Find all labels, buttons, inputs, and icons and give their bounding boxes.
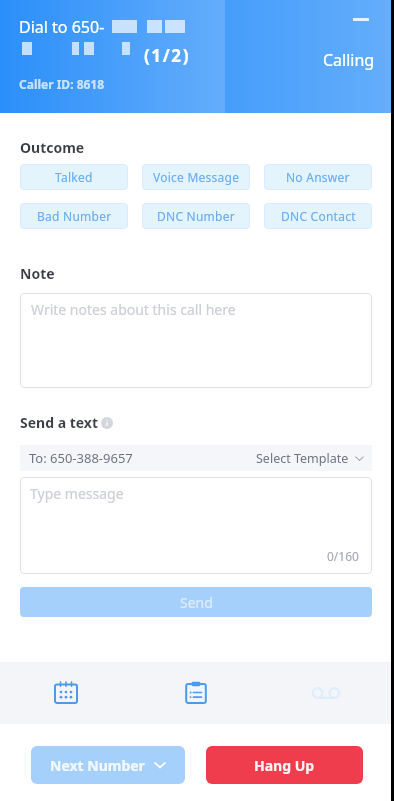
- button[interactable]: Hang Up: [206, 746, 363, 784]
- button[interactable]: Notes: [131, 662, 261, 724]
- button[interactable]: DNC Number: [142, 203, 250, 229]
- staticText: 0/160: [327, 548, 359, 564]
- button[interactable]: Send: [20, 587, 372, 617]
- button[interactable]: Talked: [20, 164, 128, 190]
- staticText: Next Number: [50, 756, 145, 775]
- staticText: Outcome: [20, 138, 85, 157]
- staticText: (1/2): [144, 44, 191, 67]
- staticText: Calling: [323, 49, 375, 71]
- button[interactable]: Bad Number: [20, 203, 128, 229]
- staticText: Dial to 650-: [19, 16, 105, 38]
- staticText: Voice Message: [153, 169, 240, 185]
- staticText: No Answer: [286, 169, 350, 185]
- staticText: DNC Contact: [281, 208, 356, 224]
- staticText: Type message: [30, 484, 124, 503]
- button[interactable]: Voice Message: [142, 164, 250, 190]
- staticText: Send a text: [20, 413, 99, 432]
- staticText: Note: [20, 264, 55, 283]
- staticText: Write notes about this call here: [31, 300, 236, 319]
- button[interactable]: Select Template: [256, 450, 372, 467]
- button[interactable]: Info: [101, 417, 113, 429]
- staticText: Caller ID: 8618: [19, 76, 105, 92]
- staticText: Send: [180, 593, 213, 612]
- staticText: Bad Number: [37, 208, 112, 224]
- staticText: DNC Number: [157, 208, 235, 224]
- button[interactable]: Minimize: [349, 7, 373, 31]
- button[interactable]: Schedule: [0, 662, 131, 724]
- button[interactable]: No Answer: [264, 164, 372, 190]
- staticText: Talked: [55, 169, 93, 185]
- staticText: Hang Up: [254, 756, 315, 775]
- staticText: Select Template: [256, 450, 349, 467]
- button[interactable]: Write notes about this call here: [20, 293, 372, 388]
- button[interactable]: Type message: [20, 477, 372, 574]
- button[interactable]: Next Number: [31, 746, 185, 784]
- button[interactable]: DNC Contact: [264, 203, 372, 229]
- staticText: To: 650-388-9657: [29, 449, 133, 467]
